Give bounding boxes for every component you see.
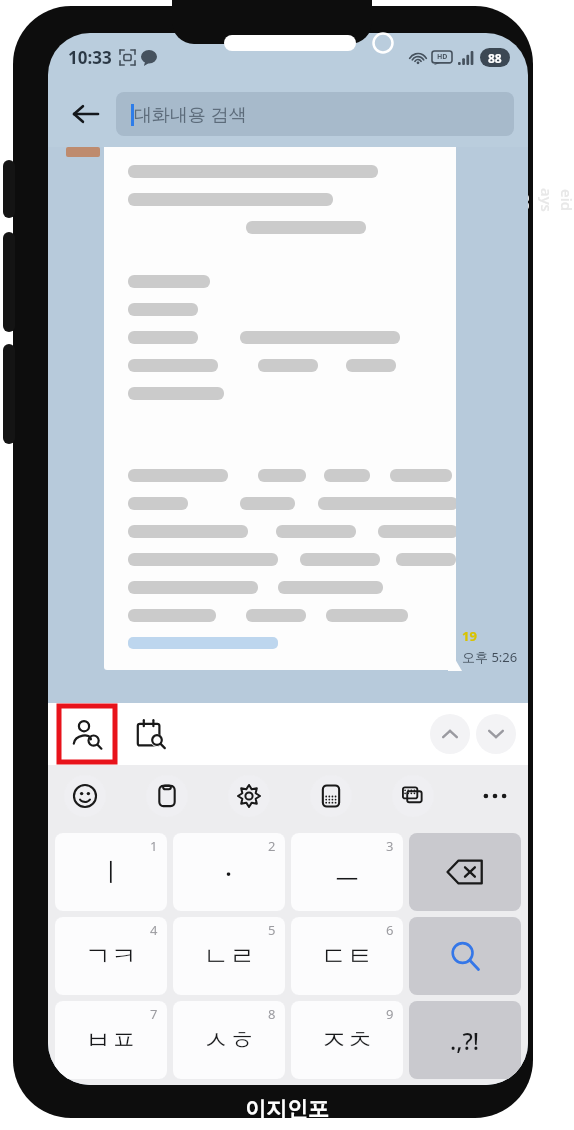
staticText: 10:33 [68, 46, 112, 69]
button[interactable]: ㅂㅍ [55, 1001, 167, 1079]
staticText: ㄷㅌ [321, 940, 373, 973]
staticText: ㄱㅋ [85, 940, 137, 973]
button[interactable]: Emoji [64, 775, 106, 817]
button[interactable]: Search by date [123, 706, 179, 762]
staticText: 이지인포 [245, 1096, 329, 1122]
button[interactable]: ㅣ [55, 833, 167, 911]
staticText: 9 [386, 1005, 394, 1023]
button[interactable]: ㄷㅌ [291, 917, 403, 995]
button[interactable]: 대화내용 검색 [116, 92, 514, 136]
button[interactable]: Keyboard layout [392, 775, 434, 817]
staticText: 대화내용 검색 [134, 102, 247, 127]
staticText: ㅈㅊ [321, 1024, 373, 1057]
staticText: ㄴㄹ [203, 940, 255, 973]
staticText: HD [437, 52, 448, 62]
button[interactable]: ㅡ [291, 833, 403, 911]
staticText: 3 [386, 837, 394, 855]
staticText: 2 [268, 837, 276, 855]
button[interactable]: Settings [228, 775, 270, 817]
button[interactable]: ㅈㅊ [291, 1001, 403, 1079]
staticText: 오후 5:26 [462, 648, 518, 666]
button[interactable]: More options [474, 775, 516, 817]
button[interactable]: Backspace [409, 833, 521, 911]
staticText: ei.reidays.com [497, 187, 574, 213]
staticText: 8 [268, 1005, 276, 1023]
button[interactable]: Next result [476, 714, 516, 754]
staticText: 1 [150, 837, 158, 855]
staticText: 88 [488, 50, 502, 66]
button[interactable]: Previous result [430, 714, 470, 754]
button[interactable]: ㄴㄹ [173, 917, 285, 995]
button[interactable]: .,?! [409, 1001, 521, 1079]
button[interactable]: ㄱㅋ [55, 917, 167, 995]
button[interactable]: Back [62, 91, 108, 137]
button[interactable]: Search [409, 917, 521, 995]
button[interactable]: One-hand mode [310, 775, 352, 817]
staticText: .,?! [450, 1025, 480, 1056]
staticText: ㅅㅎ [203, 1024, 255, 1057]
staticText: · [225, 855, 233, 890]
staticText: 7 [150, 1005, 158, 1023]
staticText: 4 [150, 921, 158, 939]
button[interactable]: ㅅㅎ [173, 1001, 285, 1079]
button[interactable]: Search by person [59, 706, 115, 762]
staticText: ㅡ [334, 856, 360, 889]
staticText: ㅂㅍ [85, 1024, 137, 1057]
staticText: 6 [386, 921, 394, 939]
button[interactable]: Clipboard [146, 775, 188, 817]
staticText: 19 [462, 627, 477, 645]
staticText: ㅣ [98, 856, 124, 889]
staticText: 5 [268, 921, 276, 939]
button[interactable]: · [173, 833, 285, 911]
